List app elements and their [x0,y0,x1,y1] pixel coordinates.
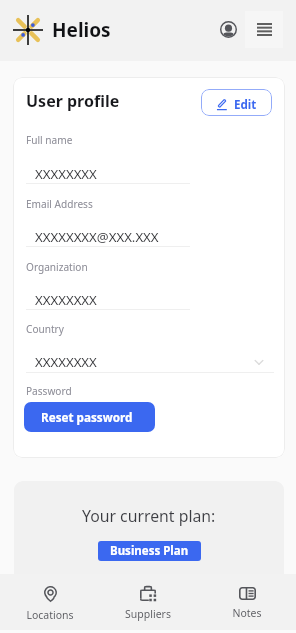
staticText: Reset password [41,409,133,425]
button[interactable]: Edit [201,89,272,116]
staticText: XXXXXXXX [35,291,97,309]
staticText: Email Address [26,197,93,211]
staticText: Business Plan [110,543,189,559]
button[interactable]: Business Plan [98,541,201,561]
staticText: XXXXXXXX [35,165,97,183]
button[interactable]: Notes [198,580,296,624]
staticText: Edit [234,97,257,113]
button[interactable]: Suppliers [99,579,197,625]
button[interactable]: Locations [1,579,99,626]
staticText: Password [26,384,72,398]
button[interactable]: Reset password [24,402,155,432]
staticText: Your current plan: [82,505,216,527]
staticText: Helios [52,17,111,43]
staticText: XXXXXXXX@XXX.XXX [35,228,159,246]
staticText: XXXXXXXX [35,353,97,371]
staticText: Organization [26,260,88,274]
button[interactable]: Account [210,11,246,47]
staticText: Notes [232,606,262,620]
staticText: User profile [26,90,120,112]
staticText: Country [26,322,64,336]
staticText: Suppliers [125,607,171,621]
staticText: Locations [26,608,74,622]
staticText: Full name [26,133,73,147]
button[interactable]: Menu [245,11,283,48]
